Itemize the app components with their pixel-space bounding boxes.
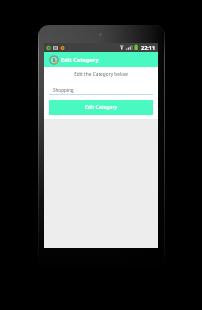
staticText: Shopping [53, 87, 74, 93]
button[interactable]: App icon [44, 52, 158, 67]
other: App icon [49, 55, 59, 65]
staticText: 22:11 [141, 44, 156, 51]
button[interactable]: Edit Category [49, 100, 153, 115]
staticText: Edit the Category below [44, 71, 158, 78]
staticText: Edit Category [61, 56, 99, 64]
button[interactable]: Shopping [49, 87, 153, 95]
staticText: Edit Category [85, 104, 118, 111]
